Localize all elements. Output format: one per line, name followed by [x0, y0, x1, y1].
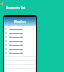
button[interactable]: [4, 35, 36, 39]
staticText: Weather: [14, 20, 26, 24]
button[interactable]: [4, 47, 36, 51]
button[interactable]: [4, 39, 36, 43]
staticText: Accounts list: [6, 6, 26, 10]
button[interactable]: [4, 43, 36, 47]
button[interactable]: [4, 51, 36, 55]
button[interactable]: [4, 27, 36, 31]
button[interactable]: [4, 31, 36, 35]
